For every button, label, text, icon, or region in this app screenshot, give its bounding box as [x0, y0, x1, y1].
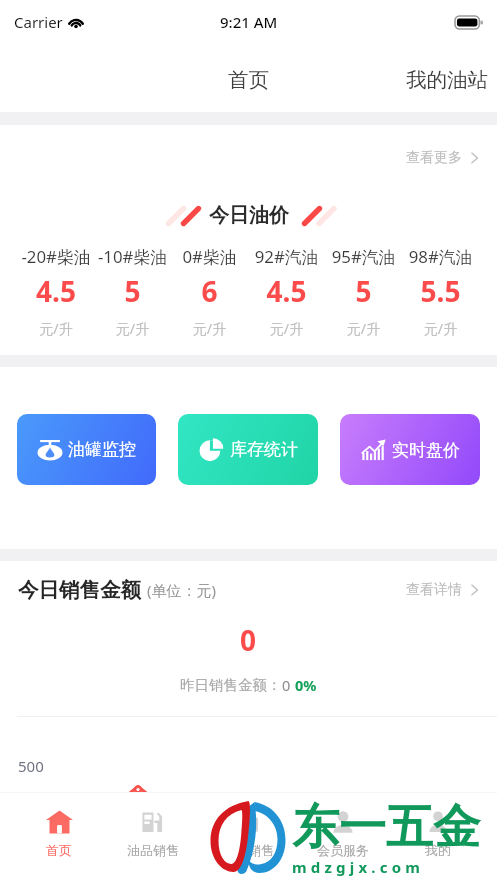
staticText: 查看更多	[406, 149, 462, 167]
staticText: 昨日销售金额：	[180, 676, 282, 694]
staticText: 元/升	[171, 319, 248, 339]
button[interactable]: 95#汽油	[325, 245, 402, 339]
staticText: -20#柴油	[18, 245, 94, 268]
staticText: 会员服务	[317, 842, 369, 858]
staticText: 元/升	[248, 319, 325, 339]
staticText: 92#汽油	[248, 245, 325, 268]
staticText: 元/升	[94, 319, 171, 339]
button[interactable]: 商品销售	[200, 793, 295, 883]
staticText: (单位：元)	[147, 580, 217, 600]
staticText: 实时盘价	[392, 440, 460, 461]
button[interactable]: 油罐监控	[17, 414, 156, 485]
staticText: 我的油站	[406, 67, 488, 93]
staticText: 今日销售金额	[18, 577, 141, 603]
staticText: 0	[282, 675, 291, 695]
staticText: 油品销售	[127, 842, 179, 858]
staticText: 5.5	[402, 272, 479, 310]
button[interactable]: 实时盘价	[340, 414, 480, 485]
staticText: -10#柴油	[94, 245, 171, 268]
staticText: 油罐监控	[68, 439, 136, 460]
staticText: 98#汽油	[402, 245, 479, 268]
button[interactable]: 会员服务	[295, 793, 390, 883]
button[interactable]: 库存统计	[178, 414, 318, 485]
staticText: 5	[94, 272, 171, 310]
staticText: 6	[171, 272, 248, 310]
staticText: 首页	[46, 842, 72, 858]
staticText: 首页	[228, 67, 269, 93]
staticText: 0#柴油	[171, 245, 248, 268]
staticText: 4.5	[248, 272, 325, 310]
staticText: Carrier	[14, 12, 63, 32]
staticText: 9:21 AM	[220, 12, 278, 32]
staticText: 0%	[295, 675, 317, 695]
button[interactable]: 油品销售	[106, 793, 200, 883]
button[interactable]: 查看更多	[402, 144, 484, 172]
button[interactable]: 92#汽油	[248, 245, 325, 339]
staticText: 4.5	[18, 272, 94, 310]
staticText: 500	[18, 756, 44, 776]
staticText: 东一五金	[292, 798, 480, 857]
staticText: 5	[325, 272, 402, 310]
staticText: 商品销售	[222, 842, 274, 858]
button[interactable]: -10#柴油	[94, 245, 171, 339]
staticText: 元/升	[18, 319, 94, 339]
button[interactable]: 查看详情	[402, 576, 484, 604]
staticText: 元/升	[325, 319, 402, 339]
staticText: 今日油价	[209, 203, 289, 228]
button[interactable]: -20#柴油	[18, 245, 94, 339]
button[interactable]: 我的油站	[395, 46, 497, 114]
staticText: 95#汽油	[325, 245, 402, 268]
button[interactable]: 98#汽油	[402, 245, 479, 339]
button[interactable]: 0#柴油	[171, 245, 248, 339]
staticText: 库存统计	[230, 439, 298, 460]
button[interactable]: 首页	[209, 46, 288, 114]
staticText: 0	[240, 621, 257, 659]
staticText: 我的	[425, 842, 451, 858]
button[interactable]: 首页	[12, 793, 106, 883]
staticText: mdzgjx.com	[292, 857, 425, 877]
staticText: 元/升	[402, 319, 479, 339]
button[interactable]: 我的	[390, 793, 485, 883]
staticText: 查看详情	[406, 581, 462, 599]
